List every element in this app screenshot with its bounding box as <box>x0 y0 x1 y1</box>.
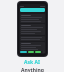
button[interactable]: Save <box>35 51 41 53</box>
button[interactable] <box>20 24 45 35</box>
staticText: Ask AI <box>24 59 40 66</box>
button[interactable] <box>20 36 45 41</box>
button[interactable]: Ask AI prompt field <box>20 8 45 12</box>
button[interactable] <box>20 14 45 23</box>
button[interactable]: Send <box>28 51 34 53</box>
button[interactable] <box>20 42 45 51</box>
button[interactable]: Ask <box>20 51 27 53</box>
staticText: Anything <box>21 67 44 72</box>
